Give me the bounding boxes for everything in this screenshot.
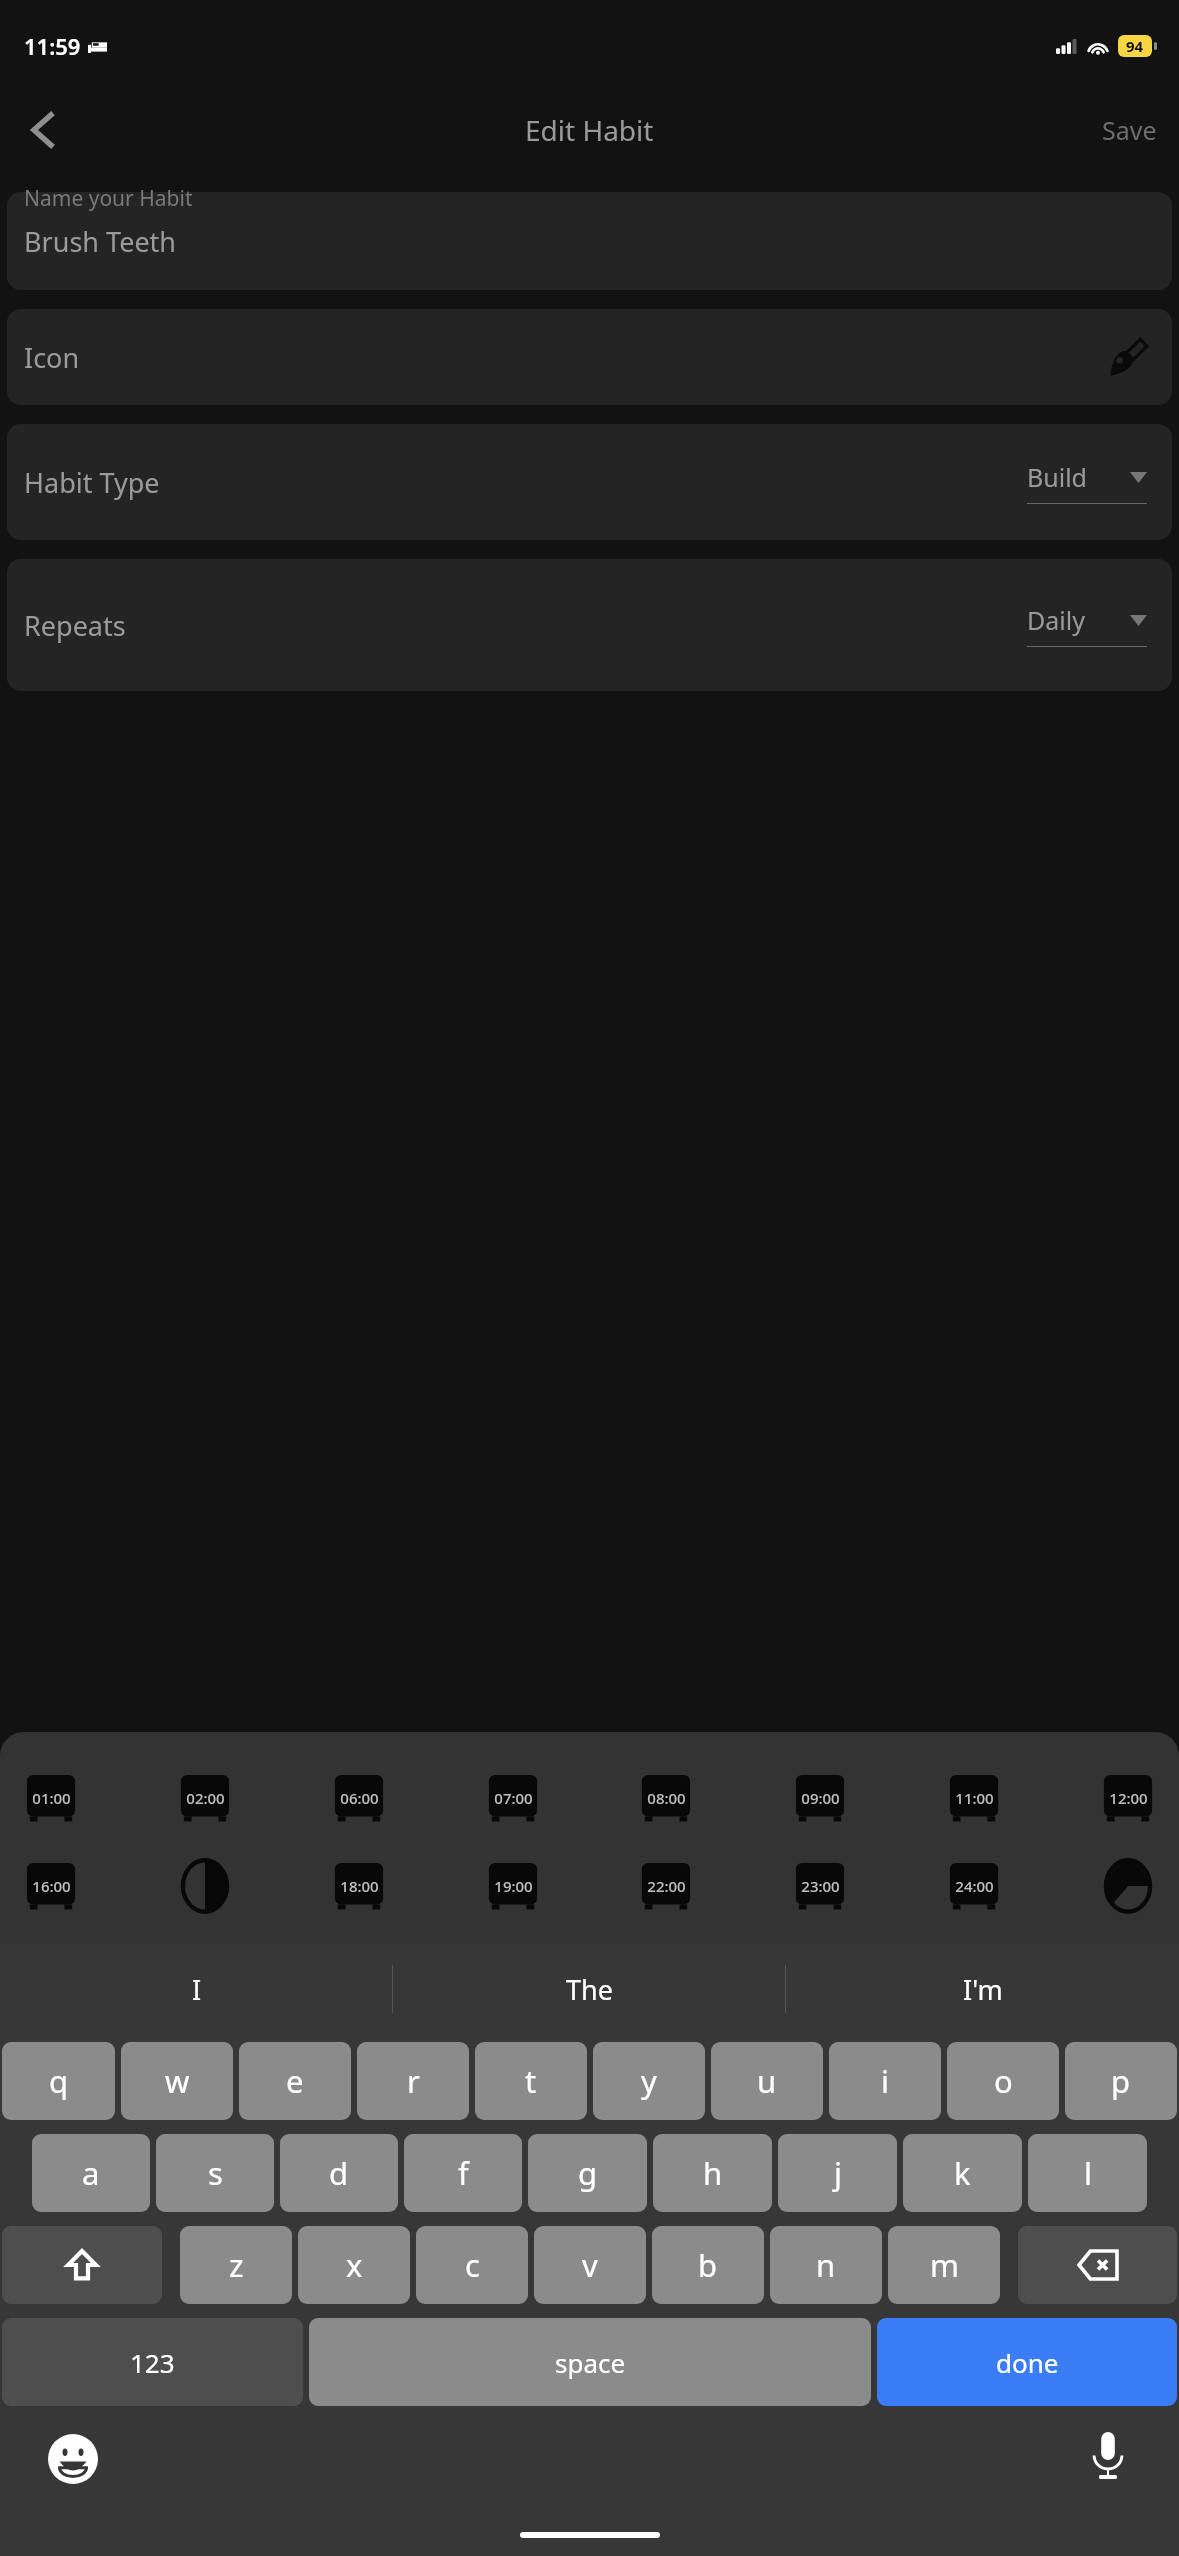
staticText: m xyxy=(930,2244,959,2286)
button[interactable]: 24:00 xyxy=(943,1858,1005,1914)
staticText: Brush Teeth xyxy=(24,223,177,260)
button[interactable]: l xyxy=(1028,2134,1147,2212)
button[interactable]: h xyxy=(653,2134,772,2212)
staticText: d xyxy=(329,2152,349,2194)
button[interactable]: e xyxy=(239,2042,351,2120)
staticText: l xyxy=(1084,2152,1092,2194)
button[interactable]: Emoji xyxy=(46,2432,100,2486)
button[interactable]: 11:00 xyxy=(943,1770,1005,1826)
button[interactable]: 01:00 xyxy=(20,1770,82,1826)
button[interactable]: n xyxy=(770,2226,882,2304)
staticText: q xyxy=(49,2060,69,2102)
button[interactable]: The xyxy=(393,1944,786,2034)
staticText: i xyxy=(881,2060,889,2102)
button[interactable]: u xyxy=(711,2042,823,2120)
staticText: 09:00 xyxy=(801,1788,840,1808)
staticText: The xyxy=(566,1971,613,2008)
staticText: 08:00 xyxy=(647,1788,686,1808)
staticText: s xyxy=(208,2152,223,2194)
staticText: done xyxy=(996,2345,1059,2380)
button[interactable]: d xyxy=(280,2134,398,2212)
staticText: v xyxy=(582,2244,598,2286)
button[interactable]: Back xyxy=(16,104,68,156)
button[interactable]: i xyxy=(829,2042,941,2120)
button[interactable]: x xyxy=(298,2226,410,2304)
staticText: 11:00 xyxy=(955,1788,994,1808)
staticText: g xyxy=(578,2152,598,2194)
button[interactable]: p xyxy=(1065,2042,1177,2120)
staticText: 123 xyxy=(130,2345,175,2380)
button[interactable]: 02:00 xyxy=(174,1770,236,1826)
staticText: 02:00 xyxy=(186,1788,225,1808)
staticText: Build xyxy=(1027,460,1130,494)
button[interactable]: Icon xyxy=(7,309,1172,405)
staticText: f xyxy=(458,2152,469,2194)
button[interactable]: s xyxy=(156,2134,274,2212)
button[interactable]: y xyxy=(593,2042,705,2120)
button[interactable]: 19:00 xyxy=(482,1858,544,1914)
button[interactable]: 123 xyxy=(2,2318,303,2406)
button[interactable]: b xyxy=(652,2226,764,2304)
button[interactable]: Backspace xyxy=(1018,2226,1177,2304)
button[interactable]: Repeats xyxy=(7,559,1172,691)
button[interactable] xyxy=(1097,1858,1159,1914)
button[interactable]: Shift xyxy=(2,2226,162,2304)
button[interactable]: o xyxy=(947,2042,1059,2120)
button[interactable]: w xyxy=(121,2042,233,2120)
button[interactable]: Dictation xyxy=(1081,2430,1135,2484)
staticText: Save xyxy=(1102,113,1157,147)
button[interactable]: v xyxy=(534,2226,646,2304)
button[interactable] xyxy=(174,1858,236,1914)
button[interactable]: c xyxy=(416,2226,528,2304)
button[interactable]: space xyxy=(309,2318,871,2406)
staticText: 23:00 xyxy=(801,1876,840,1896)
button[interactable]: I xyxy=(0,1944,393,2034)
staticText: u xyxy=(757,2060,777,2102)
button[interactable]: done xyxy=(877,2318,1177,2406)
button[interactable]: Habit Type xyxy=(7,424,1172,540)
button[interactable]: Save xyxy=(1102,113,1157,147)
button[interactable]: 06:00 xyxy=(328,1770,390,1826)
staticText: c xyxy=(465,2244,480,2286)
button[interactable]: j xyxy=(778,2134,897,2212)
button[interactable]: k xyxy=(903,2134,1022,2212)
button[interactable]: g xyxy=(528,2134,647,2212)
staticText: w xyxy=(165,2060,190,2102)
staticText: p xyxy=(1111,2060,1131,2102)
staticText: Name your Habit xyxy=(24,184,193,213)
button[interactable]: f xyxy=(404,2134,522,2212)
staticText: 01:00 xyxy=(32,1788,71,1808)
button[interactable]: 18:00 xyxy=(328,1858,390,1914)
staticText: y xyxy=(641,2060,657,2102)
staticText: j xyxy=(834,2152,842,2194)
button[interactable]: t xyxy=(475,2042,587,2120)
staticText: 94 xyxy=(1126,36,1144,56)
button[interactable]: a xyxy=(32,2134,150,2212)
button[interactable]: 16:00 xyxy=(20,1858,82,1914)
button[interactable]: 12:00 xyxy=(1097,1770,1159,1826)
staticText: 19:00 xyxy=(494,1876,533,1896)
staticText: e xyxy=(286,2060,304,2102)
button[interactable]: z xyxy=(180,2226,292,2304)
button[interactable]: 07:00 xyxy=(482,1770,544,1826)
staticText: Daily xyxy=(1027,603,1130,637)
staticText: I'm xyxy=(963,1971,1003,2008)
staticText: Habit Type xyxy=(24,464,160,501)
button[interactable]: r xyxy=(357,2042,469,2120)
staticText: Edit Habit xyxy=(525,111,654,149)
button[interactable]: q xyxy=(2,2042,115,2120)
button[interactable]: I'm xyxy=(786,1944,1179,2034)
button[interactable]: m xyxy=(888,2226,1000,2304)
button[interactable]: 23:00 xyxy=(789,1858,851,1914)
staticText: z xyxy=(229,2244,244,2286)
staticText: k xyxy=(954,2152,971,2194)
staticText: 06:00 xyxy=(340,1788,379,1808)
staticText: 22:00 xyxy=(647,1876,686,1896)
button[interactable]: 22:00 xyxy=(635,1858,697,1914)
staticText: 18:00 xyxy=(340,1876,379,1896)
button[interactable]: 09:00 xyxy=(789,1770,851,1826)
staticText: t xyxy=(525,2060,537,2102)
button[interactable]: 08:00 xyxy=(635,1770,697,1826)
button[interactable]: Brush Teeth xyxy=(7,192,1172,290)
staticText: b xyxy=(698,2244,718,2286)
